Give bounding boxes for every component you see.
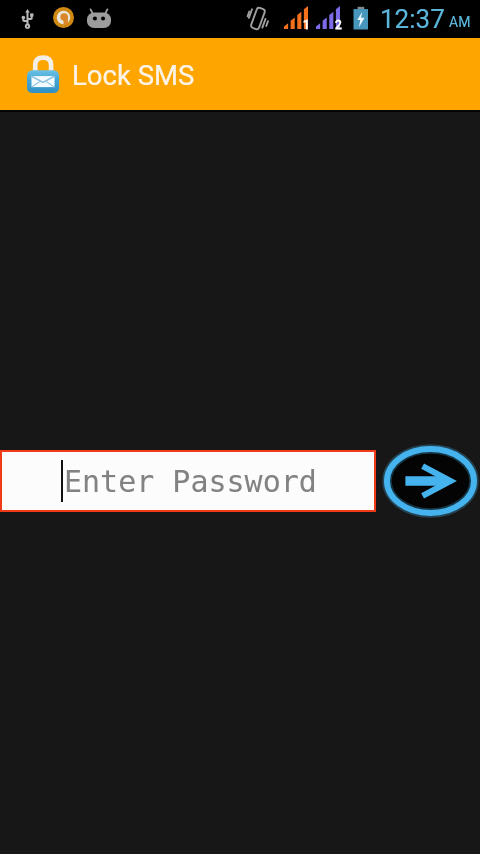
button[interactable]: Enter Password [2, 452, 374, 510]
staticText: AM [449, 14, 471, 30]
staticText: Enter Password [64, 464, 317, 499]
staticText: 2 [335, 18, 342, 32]
staticText: Lock SMS [72, 59, 195, 91]
staticText: 12:37 [380, 4, 445, 34]
staticText: 1 [303, 18, 310, 32]
button[interactable]: Submit password [383, 445, 477, 517]
